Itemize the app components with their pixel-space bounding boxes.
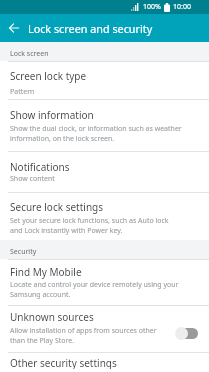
staticText: Find My Mobile bbox=[10, 265, 82, 279]
staticText: Show information bbox=[10, 108, 94, 122]
staticText: Lock screen and security bbox=[28, 21, 153, 36]
button[interactable]: Screen lock type bbox=[0, 62, 209, 99]
button[interactable]: Find My Mobile bbox=[0, 260, 209, 305]
button[interactable]: Show information bbox=[0, 100, 209, 151]
staticText: 10:00 bbox=[173, 2, 191, 12]
button[interactable]: Notifications bbox=[0, 152, 209, 192]
staticText: Show the dual clock, or information such… bbox=[10, 124, 182, 134]
staticText: and Lock instantly with Power key. bbox=[10, 226, 123, 236]
staticText: Secure lock settings bbox=[10, 200, 103, 214]
button[interactable] bbox=[0, 14, 28, 42]
staticText: Samsung account. bbox=[10, 290, 71, 300]
staticText: Other security settings bbox=[10, 356, 117, 369]
button[interactable]: Unknown sources bbox=[0, 306, 209, 352]
staticText: 100% bbox=[143, 2, 161, 12]
staticText: Locate and control your device remotely … bbox=[10, 280, 179, 290]
staticText: Show content bbox=[10, 174, 55, 184]
staticText: Pattern bbox=[10, 87, 35, 97]
staticText: Set your secure lock functions, such as … bbox=[10, 216, 169, 226]
staticText: Allow installation of apps from sources … bbox=[10, 326, 157, 336]
staticText: Lock screen bbox=[10, 49, 49, 59]
staticText: Security bbox=[10, 247, 37, 257]
staticText: information, on the lock screen. bbox=[10, 134, 115, 144]
staticText: Screen lock type bbox=[10, 69, 87, 83]
button[interactable]: Other security settings bbox=[0, 353, 209, 372]
staticText: than the Play Store. bbox=[10, 336, 75, 346]
staticText: Notifications bbox=[10, 160, 70, 174]
button[interactable]: Secure lock settings bbox=[0, 193, 209, 240]
staticText: Unknown sources bbox=[10, 310, 94, 324]
